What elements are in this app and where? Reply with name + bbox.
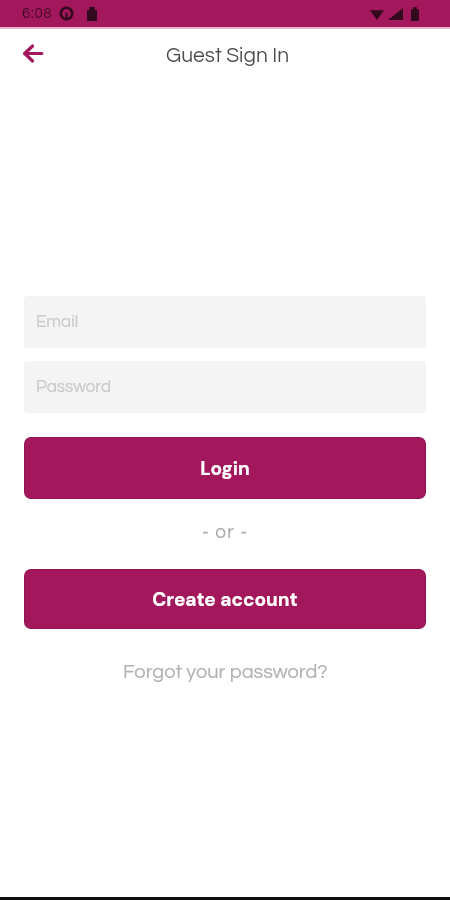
button[interactable]: Email [24,296,426,348]
staticText: Password [36,378,112,396]
button[interactable]: Login [24,437,426,499]
staticText: Forgot your password? [123,662,328,683]
staticText: Login [200,456,250,481]
button[interactable]: Back [9,29,57,77]
button[interactable]: Password [24,361,426,413]
staticText: - or - [202,522,249,542]
staticText: 6:08 [22,6,53,21]
staticText: Guest Sign In [166,45,290,67]
staticText: Email [36,313,79,331]
button[interactable]: Forgot your password? [24,654,426,690]
button[interactable]: Create account [24,569,426,629]
staticText: Create account [152,587,298,612]
